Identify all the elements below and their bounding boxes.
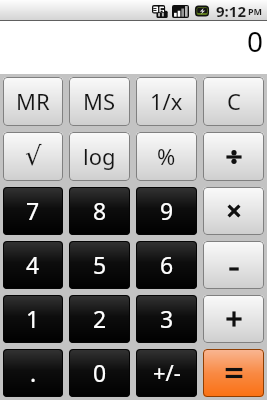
staticText: 9 (160, 195, 174, 226)
staticText: % (157, 141, 176, 171)
staticText: log (83, 141, 116, 171)
staticText: PM (248, 5, 263, 17)
button[interactable]: log (69, 132, 130, 181)
button[interactable]: 8 (69, 187, 130, 235)
staticText: 4 (26, 249, 40, 280)
button[interactable]: 6 (136, 241, 197, 289)
staticText: 1/x (150, 86, 183, 116)
staticText: . (30, 357, 37, 388)
staticText: MR (16, 86, 50, 116)
button[interactable]: % (136, 132, 197, 181)
staticText: MS (83, 86, 116, 116)
staticText: 0 (247, 22, 264, 60)
button[interactable]: 2 (69, 295, 130, 343)
staticText: 6 (160, 249, 174, 280)
button[interactable]: 3 (136, 295, 197, 343)
button[interactable]: 0 (69, 349, 130, 397)
button[interactable]: 9 (136, 187, 197, 235)
button[interactable]: 1 (3, 295, 63, 343)
button[interactable]: MS (69, 77, 130, 126)
button[interactable]: 4 (3, 241, 63, 289)
staticText: C (227, 86, 241, 116)
staticText: 9:12 (216, 1, 246, 21)
staticText: 5 (93, 249, 107, 280)
button[interactable]: 5 (69, 241, 130, 289)
button[interactable]: Multiply (203, 187, 264, 235)
staticText: 8 (93, 195, 107, 226)
staticText: 0 (93, 357, 107, 388)
button[interactable]: +/- (136, 349, 197, 397)
button[interactable]: Minus (203, 241, 264, 289)
staticText: √ (25, 141, 42, 171)
button[interactable]: Divide (203, 132, 264, 181)
staticText: +/- (153, 357, 181, 387)
button[interactable]: MR (3, 77, 63, 126)
staticText: 1 (26, 303, 40, 334)
button[interactable]: C (203, 77, 264, 126)
staticText: 3 (160, 303, 174, 334)
button[interactable]: √ (3, 132, 63, 181)
button[interactable]: Equals (203, 349, 264, 397)
button[interactable]: 1/x (136, 77, 197, 126)
button[interactable]: Plus (203, 295, 264, 343)
staticText: 2 (93, 303, 107, 334)
button[interactable]: 7 (3, 187, 63, 235)
staticText: 7 (26, 195, 40, 226)
button[interactable]: . (3, 349, 63, 397)
